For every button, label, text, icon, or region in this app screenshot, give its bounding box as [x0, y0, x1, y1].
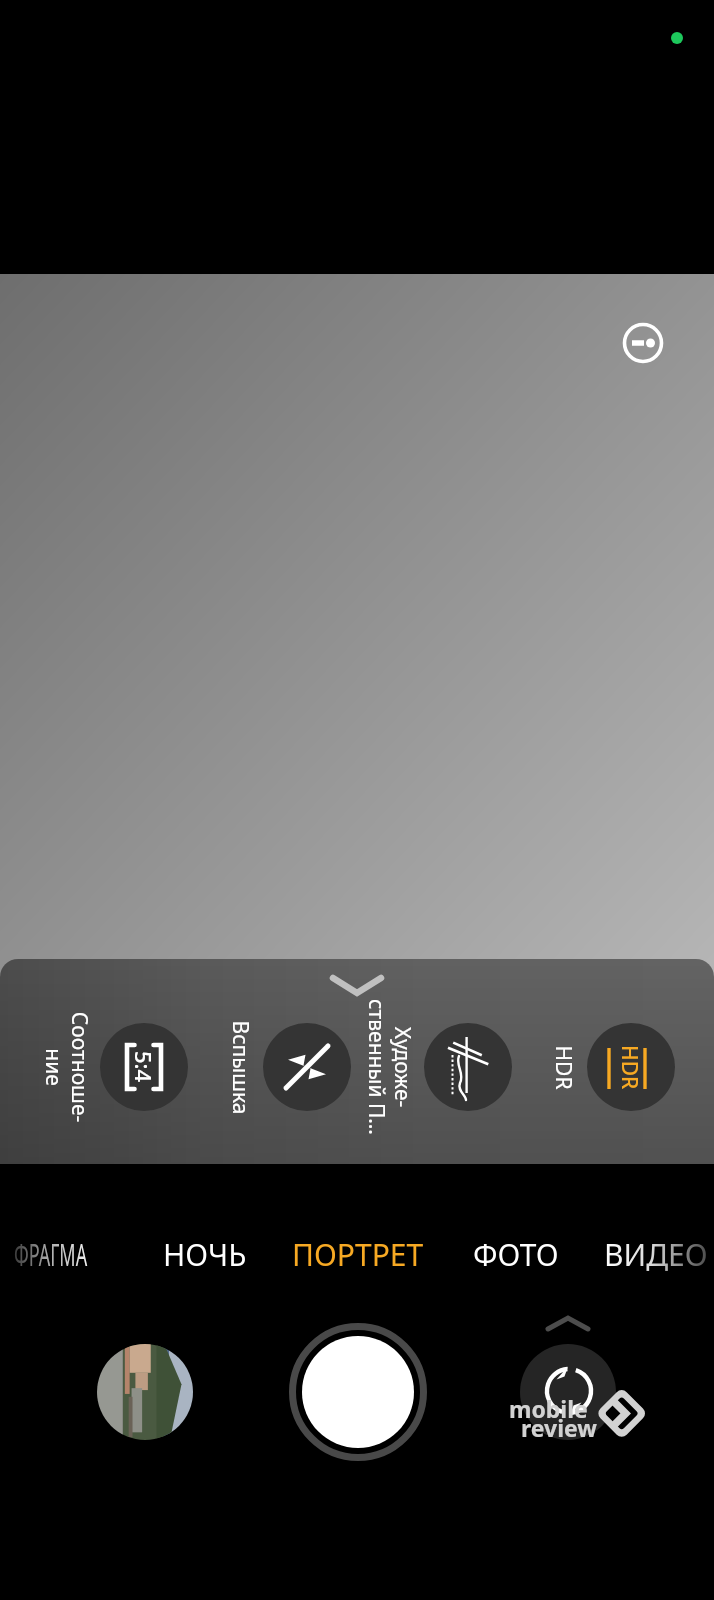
button[interactable]: More options [540, 1308, 596, 1336]
staticText: HDR [548, 1045, 577, 1089]
staticText: ФРАГМА [14, 1234, 87, 1275]
button[interactable] [424, 1023, 512, 1111]
staticText: Вспышка [225, 1020, 254, 1114]
button[interactable]: ВИДЕО [604, 1234, 708, 1275]
button[interactable]: Gallery [97, 1344, 193, 1440]
button[interactable]: ПОРТРЕТ [292, 1234, 424, 1275]
button[interactable] [0, 959, 714, 1164]
button[interactable]: Collapse settings [323, 968, 391, 1002]
staticText: ФОТО [473, 1234, 559, 1275]
button[interactable] [263, 1023, 351, 1111]
staticText: mobile [509, 1393, 588, 1424]
staticText: Соотноше- ние [39, 1011, 93, 1122]
button[interactable] [587, 1023, 675, 1111]
staticText: 5:4 [129, 1051, 159, 1083]
button[interactable]: Switch camera [520, 1344, 616, 1440]
button[interactable]: Exposure [619, 319, 667, 367]
button[interactable]: НОЧЬ [163, 1234, 247, 1275]
staticText: review [521, 1412, 598, 1443]
staticText: НОЧЬ [163, 1234, 247, 1275]
button[interactable] [100, 1023, 188, 1111]
staticText: ПОРТРЕТ [292, 1234, 424, 1275]
button[interactable]: ФРАГМА [14, 1234, 87, 1275]
staticText: ВИДЕО [604, 1234, 708, 1275]
staticText: Художе- ственный П… [363, 999, 417, 1135]
staticText: HDR [615, 1045, 644, 1090]
button[interactable]: Take photo [289, 1323, 427, 1461]
button[interactable]: review [521, 1412, 598, 1443]
button[interactable]: ФОТО [473, 1234, 559, 1275]
button[interactable]: mobile [509, 1393, 588, 1424]
